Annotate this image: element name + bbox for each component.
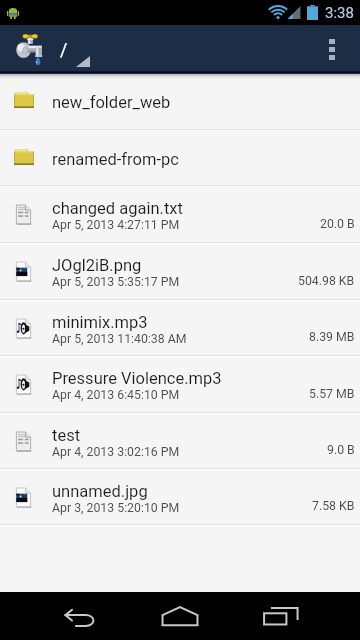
staticText: Apr 5, 2013 4:27:11 PM	[52, 218, 180, 232]
button[interactable]: More options	[312, 25, 351, 73]
staticText: renamed-from-pc	[52, 150, 179, 169]
staticText: changed again.txt	[52, 199, 183, 218]
button[interactable]: Back	[44, 592, 116, 640]
button[interactable]: Home	[144, 592, 216, 640]
button[interactable]: changed again.txt	[0, 187, 360, 242]
staticText: /	[60, 39, 68, 60]
staticText: 504.98 KB	[298, 274, 355, 288]
button[interactable]: unnamed.jpg	[0, 470, 360, 524]
staticText: Pressure Violence.mp3	[52, 369, 222, 388]
staticText: test	[52, 426, 81, 445]
button[interactable]: /	[60, 25, 90, 73]
staticText: 7.58 KB	[312, 499, 355, 513]
button[interactable]: JOgl2iB.png	[0, 244, 360, 299]
staticText: unnamed.jpg	[52, 482, 148, 501]
staticText: JOgl2iB.png	[52, 256, 142, 275]
staticText: 20.0 B	[320, 217, 355, 231]
staticText: 8.39 MB	[309, 330, 355, 344]
button[interactable]: App icon	[9, 25, 49, 73]
other: App icon	[16, 34, 42, 65]
button[interactable]: new_folder_web	[0, 73, 360, 129]
staticText: Apr 4, 2013 3:02:16 PM	[52, 445, 180, 459]
staticText: Apr 5, 2013 11:40:38 AM	[52, 332, 187, 346]
staticText: Apr 3, 2013 5:20:10 PM	[52, 501, 180, 515]
staticText: minimix.mp3	[52, 313, 148, 332]
staticText: 5.57 MB	[309, 387, 355, 401]
staticText: new_folder_web	[52, 93, 171, 112]
staticText: Apr 4, 2013 6:45:10 PM	[52, 388, 180, 402]
button[interactable]: Pressure Violence.mp3	[0, 357, 360, 412]
staticText: 3:38	[325, 4, 354, 22]
button[interactable]: renamed-from-pc	[0, 131, 360, 185]
button[interactable]: Recent apps	[245, 592, 317, 640]
button[interactable]: test	[0, 414, 360, 468]
button[interactable]: minimix.mp3	[0, 301, 360, 355]
staticText: 9.0 B	[327, 443, 355, 457]
staticText: Apr 5, 2013 5:35:17 PM	[52, 275, 180, 289]
